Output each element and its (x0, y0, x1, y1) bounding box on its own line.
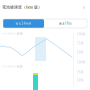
staticText: 75% (77, 42, 83, 45)
staticText: バッテリー残量 (2, 32, 23, 35)
staticText: 50% (77, 79, 83, 82)
button[interactable]: 電池健康度（beta 版） (0, 0, 90, 14)
button[interactable]: 過去24時間 (3, 19, 44, 28)
button[interactable]: 過去10日 (44, 19, 87, 28)
staticText: バッテリー状態 (2, 65, 23, 68)
staticText: 100% (77, 61, 85, 64)
staticText: 過去24時間 (15, 22, 31, 25)
staticText: 50% (77, 51, 83, 54)
staticText: › (83, 3, 85, 11)
staticText: 過去10日 (59, 22, 72, 25)
staticText: 75% (77, 71, 83, 74)
staticText: 100% (77, 33, 85, 36)
staticText: 電池健康度（beta 版） (2, 4, 42, 10)
